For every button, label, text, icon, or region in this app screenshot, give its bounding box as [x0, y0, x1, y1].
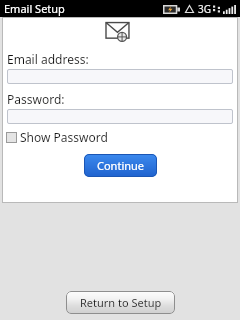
button[interactable]: Return to Setup: [66, 291, 175, 314]
button[interactable]: [7, 69, 233, 84]
staticText: Email Setup: [4, 1, 65, 16]
staticText: 3G: [198, 2, 211, 16]
button[interactable]: Show Password: [6, 129, 108, 145]
other: Email: [106, 21, 134, 47]
button[interactable]: [7, 109, 233, 124]
staticText: Continue: [97, 158, 145, 173]
staticText: Email address:: [7, 51, 89, 67]
button[interactable]: Continue: [84, 154, 157, 177]
staticText: Password:: [7, 91, 65, 107]
staticText: Show Password: [20, 129, 108, 145]
staticText: Return to Setup: [80, 295, 162, 310]
